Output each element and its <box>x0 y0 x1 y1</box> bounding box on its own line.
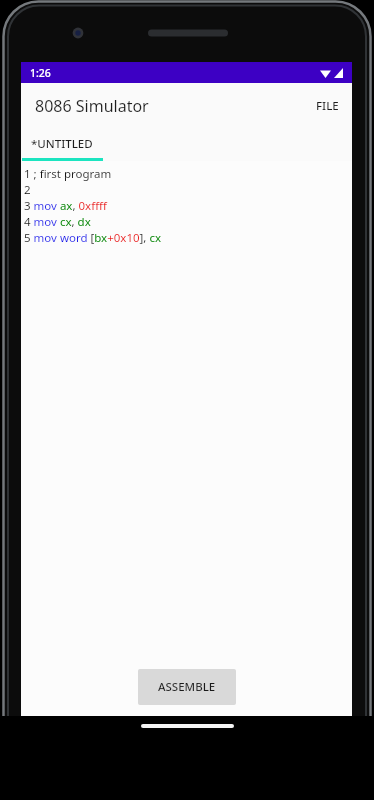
other: Wi-Fi <box>320 68 331 78</box>
staticText: 2 <box>24 182 31 198</box>
staticText: 8086 Simulator <box>35 95 149 117</box>
other: Mobile signal <box>334 68 343 78</box>
staticText: *UNTITLED <box>31 136 93 152</box>
button[interactable]: ASSEMBLE <box>138 669 236 705</box>
button[interactable]: FILE <box>303 83 352 129</box>
staticText: 5 mov word [bx+0x10], cx <box>24 230 162 246</box>
staticText: ASSEMBLE <box>158 679 216 695</box>
staticText: 1:26 <box>30 66 51 80</box>
button[interactable]: 1 ; first program <box>21 161 352 658</box>
staticText: FILE <box>316 98 339 114</box>
button[interactable]: *UNTITLED <box>21 129 103 161</box>
staticText: 4 mov cx, dx <box>24 214 91 230</box>
staticText: 3 mov ax, 0xffff <box>24 198 107 214</box>
staticText: 1 ; first program <box>24 166 112 182</box>
